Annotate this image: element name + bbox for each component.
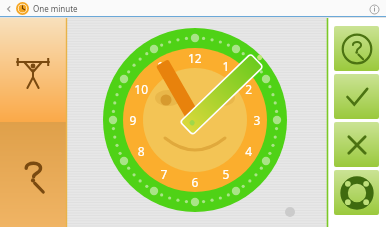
button[interactable]: Back [2,2,16,16]
button[interactable]: Info [367,2,381,16]
button[interactable]: App icon [16,2,29,15]
button[interactable]: Cancel [334,122,379,167]
staticText: One minute [33,3,78,14]
button[interactable]: Exercise [0,18,66,122]
button[interactable]: Help [0,122,66,227]
button[interactable]: Accept [334,74,379,119]
button[interactable]: Lifebuoy [334,170,379,215]
button[interactable]: Help [334,26,379,71]
